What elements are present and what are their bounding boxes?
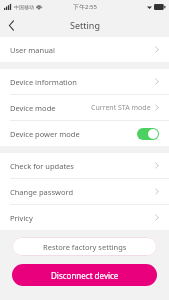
- staticText: Device information: [10, 77, 77, 87]
- staticText: 中国移动: [14, 4, 34, 10]
- button[interactable]: Back: [0, 14, 22, 36]
- button[interactable]: Privicy: [0, 205, 169, 230]
- staticText: Restore factory settings: [43, 242, 127, 252]
- staticText: Device power mode: [10, 129, 80, 139]
- staticText: Device mode: [10, 103, 56, 113]
- staticText: Check for updates: [10, 161, 74, 171]
- staticText: Disconnect device: [51, 270, 119, 281]
- button[interactable]: Disconnect device: [12, 264, 157, 286]
- staticText: Setting: [70, 19, 100, 31]
- button[interactable]: Device power mode toggle: [137, 128, 159, 140]
- staticText: Change password: [10, 187, 74, 197]
- button[interactable]: Change password: [0, 179, 169, 204]
- staticText: User manual: [10, 45, 55, 55]
- button[interactable]: Device mode: [0, 95, 169, 120]
- button[interactable]: Device information: [0, 69, 169, 94]
- button[interactable]: Check for updates: [0, 153, 169, 178]
- staticText: Current STA mode: [91, 103, 151, 113]
- staticText: Privicy: [10, 213, 33, 223]
- button[interactable]: Restore factory settings: [12, 237, 157, 256]
- staticText: 下午2:55: [73, 3, 97, 11]
- button[interactable]: User manual: [0, 37, 169, 62]
- button[interactable]: Device power mode: [0, 121, 169, 146]
